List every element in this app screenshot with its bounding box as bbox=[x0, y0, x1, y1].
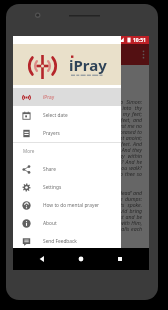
button[interactable]: How to do mental prayer bbox=[13, 196, 121, 214]
staticText: iPray bbox=[43, 94, 55, 101]
button[interactable]: Share bbox=[13, 160, 121, 178]
staticText: How to do mental prayer bbox=[43, 202, 100, 209]
button[interactable]: Recents bbox=[114, 253, 126, 265]
staticText: Send Feedback bbox=[43, 238, 77, 245]
staticText: Prayers bbox=[43, 130, 60, 137]
staticText: iPray bbox=[69, 55, 107, 75]
staticText: Then, turning to the woman, He said to S… bbox=[22, 98, 142, 183]
button[interactable]: Home bbox=[75, 253, 87, 265]
staticText: 10:51 bbox=[133, 37, 146, 44]
staticText: More bbox=[23, 148, 35, 154]
staticText: Settings bbox=[43, 184, 62, 191]
staticText: Select date bbox=[43, 112, 68, 119]
button[interactable]: About bbox=[13, 214, 121, 232]
staticText: Share bbox=[43, 166, 56, 173]
button[interactable]: Select date bbox=[13, 106, 121, 124]
button[interactable]: Prayers bbox=[13, 124, 121, 142]
staticText: They had thought that these things were … bbox=[22, 189, 142, 238]
button[interactable]: Settings bbox=[13, 178, 121, 196]
button[interactable]: iPray bbox=[13, 88, 121, 106]
staticText: About bbox=[43, 220, 57, 227]
button[interactable]: Send Feedback bbox=[13, 232, 121, 250]
button[interactable]: Back bbox=[36, 253, 48, 265]
